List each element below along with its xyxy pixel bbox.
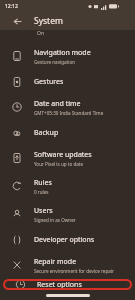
button[interactable]: Date and time (0, 93, 135, 121)
button[interactable]: Back (0, 12, 34, 30)
button[interactable]: Reset options (3, 279, 132, 290)
button[interactable]: Navigation mode (0, 42, 135, 70)
staticText: 0 rules (34, 189, 49, 195)
staticText: Signed in as Owner (34, 217, 76, 223)
staticText: Software updates (34, 150, 92, 160)
staticText: Navigation mode (34, 48, 91, 58)
staticText: On (37, 30, 44, 37)
staticText: 12:12 (5, 3, 18, 10)
staticText: Backup (34, 128, 59, 138)
staticText: Developer options (34, 235, 95, 245)
button[interactable]: Rules (0, 172, 135, 200)
button[interactable]: Developer options (0, 228, 135, 251)
button[interactable]: Users (0, 200, 135, 228)
staticText: Date and time (34, 99, 81, 109)
staticText: Users (34, 206, 53, 216)
staticText: Secure environment for device repair (34, 268, 114, 274)
staticText: System (34, 15, 63, 27)
staticText: Your Pixel is up to date (34, 161, 84, 167)
button[interactable]: Software updates (0, 144, 135, 172)
staticText: GMT+05:30 India Standard Time (34, 110, 104, 116)
staticText: Rules (34, 178, 52, 188)
button[interactable]: Backup (0, 121, 135, 144)
staticText: Reset options (37, 280, 82, 290)
button[interactable]: Repair mode (0, 251, 135, 279)
button[interactable]: Gestures (0, 70, 135, 93)
staticText: Gesture navigation (34, 59, 76, 65)
button[interactable]: On (0, 30, 135, 42)
staticText: Gestures (34, 77, 64, 87)
staticText: Repair mode (34, 257, 77, 267)
